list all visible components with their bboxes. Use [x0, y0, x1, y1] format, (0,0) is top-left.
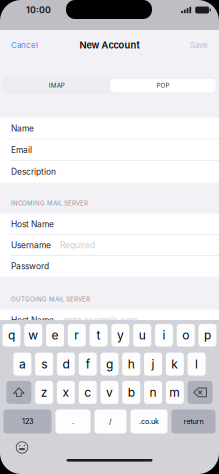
staticText: p	[204, 328, 211, 342]
button[interactable]: q	[2, 324, 20, 346]
button[interactable]: Cancel	[0, 34, 44, 56]
button[interactable]: j	[144, 353, 162, 376]
staticText: g	[106, 357, 113, 371]
staticText: y	[117, 328, 124, 342]
staticText: Username	[11, 240, 51, 250]
staticText: /	[109, 417, 112, 426]
staticText: Host Name	[11, 315, 54, 325]
button[interactable]: Username	[0, 235, 219, 256]
button[interactable]: i	[155, 324, 173, 346]
button[interactable]: o	[177, 324, 195, 346]
button[interactable]: Shift	[6, 381, 31, 404]
button[interactable]: z	[35, 381, 53, 404]
button[interactable]: Host Name	[0, 310, 219, 331]
staticText: IMAP	[49, 82, 65, 89]
button[interactable]: r	[68, 324, 86, 346]
button[interactable]: POP	[110, 79, 216, 92]
staticText: Cancel	[11, 40, 38, 50]
staticText: return	[183, 417, 203, 426]
button[interactable]: Save	[184, 34, 219, 56]
button[interactable]: Password	[0, 256, 219, 277]
staticText: s	[41, 357, 47, 371]
staticText: o	[182, 328, 189, 342]
staticText: z	[41, 385, 48, 400]
staticText: j	[152, 357, 155, 371]
staticText: Name	[11, 123, 34, 134]
staticText: i	[162, 328, 165, 342]
button[interactable]: u	[133, 324, 151, 346]
staticText: d	[62, 357, 69, 371]
staticText: b	[128, 385, 135, 400]
staticText: New Account	[79, 39, 139, 51]
staticText: Email	[11, 145, 32, 155]
staticText: a	[19, 357, 26, 371]
staticText: e	[51, 328, 58, 342]
staticText: k	[171, 357, 178, 371]
staticText: l	[195, 357, 198, 371]
staticText: 123	[22, 417, 33, 426]
staticText: Required	[60, 240, 95, 250]
button[interactable]: v	[100, 381, 118, 404]
button[interactable]: e	[46, 324, 64, 346]
button[interactable]: 123	[3, 409, 51, 433]
button[interactable]: Delete	[188, 381, 213, 404]
button[interactable]: Description	[0, 161, 219, 183]
staticText: f	[86, 357, 90, 371]
button[interactable]: .	[55, 409, 90, 433]
button[interactable]: .co.uk	[130, 409, 167, 433]
button[interactable]: Name	[0, 118, 219, 139]
staticText: .	[72, 417, 74, 426]
staticText: r	[74, 328, 79, 342]
staticText: h	[128, 357, 135, 371]
staticText: OUTGOING MAIL SERVER	[11, 295, 90, 303]
button[interactable]: l	[188, 353, 206, 376]
button[interactable]: Host Name	[0, 214, 219, 235]
button[interactable]: k	[166, 353, 184, 376]
button[interactable]: w	[24, 324, 42, 346]
button[interactable]: p	[198, 324, 216, 346]
staticText: smtp.example.com	[63, 315, 137, 325]
staticText: INCOMING MAIL SERVER	[11, 199, 88, 207]
button[interactable]: s	[35, 353, 53, 376]
button[interactable]: x	[57, 381, 75, 404]
button[interactable]: a	[13, 353, 31, 376]
button[interactable]: c	[79, 381, 97, 404]
staticText: q	[8, 328, 15, 342]
staticText: .co.uk	[139, 417, 159, 426]
staticText: x	[62, 385, 69, 400]
staticText: Save	[190, 40, 208, 50]
staticText: t	[97, 328, 101, 342]
button[interactable]: g	[100, 353, 118, 376]
staticText: m	[169, 385, 180, 400]
button[interactable]: /	[94, 409, 126, 433]
staticText: Description	[11, 167, 56, 177]
button[interactable]: t	[90, 324, 108, 346]
button[interactable]: f	[79, 353, 97, 376]
button[interactable]: n	[144, 381, 162, 404]
button[interactable]: return	[171, 409, 215, 433]
button[interactable]: b	[122, 381, 140, 404]
staticText: POP	[157, 82, 170, 89]
button[interactable]: y	[111, 324, 129, 346]
button[interactable]: d	[57, 353, 75, 376]
staticText: c	[84, 385, 91, 400]
button[interactable]: m	[166, 381, 184, 404]
staticText: Host Name	[11, 219, 54, 229]
staticText: 10:00	[26, 5, 51, 15]
staticText: n	[150, 385, 157, 400]
button[interactable]: h	[122, 353, 140, 376]
button[interactable]: IMAP	[3, 77, 110, 94]
staticText: w	[28, 328, 38, 342]
staticText: u	[139, 328, 146, 342]
button[interactable]: Emoji keyboard	[15, 441, 28, 454]
staticText: v	[106, 385, 113, 400]
staticText: Password	[11, 261, 49, 271]
button[interactable]: Email	[0, 139, 219, 161]
